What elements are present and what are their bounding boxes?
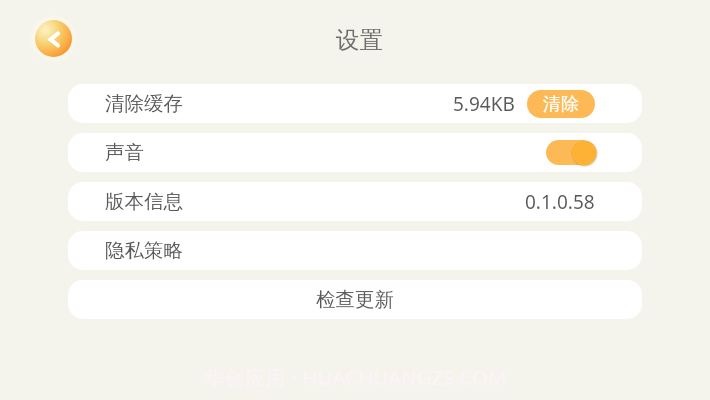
staticText: 华创应用 · HUACHUANGZS.COM [204, 364, 507, 391]
staticText: 检查更新 [316, 287, 394, 312]
button[interactable]: 隐私策略 [68, 231, 642, 270]
staticText: 设置 [336, 25, 383, 55]
staticText: 0.1.0.58 [525, 189, 595, 215]
staticText: 清除 [543, 93, 579, 116]
button[interactable]: 声音 [68, 133, 642, 172]
button[interactable]: Sound toggle [546, 140, 597, 166]
button[interactable]: Back [29, 14, 78, 63]
staticText: 清除缓存 [105, 91, 183, 116]
staticText: 声音 [105, 140, 144, 165]
button[interactable]: 清除缓存 [68, 84, 642, 123]
button[interactable]: 清除 [527, 90, 595, 118]
staticText: 隐私策略 [105, 238, 183, 263]
staticText: 版本信息 [105, 189, 183, 214]
button[interactable]: 检查更新 [68, 280, 642, 319]
button[interactable]: 版本信息 [68, 182, 642, 221]
staticText: 5.94KB [453, 91, 515, 117]
